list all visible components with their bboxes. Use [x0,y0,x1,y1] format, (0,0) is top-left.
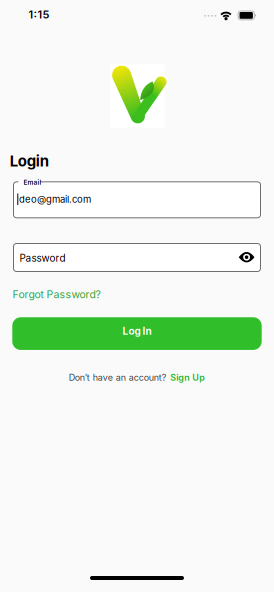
staticText: 1:15 [28,8,49,21]
staticText: Sign Up [170,372,205,383]
staticText: Log In [122,325,151,337]
button[interactable]: Log In [12,317,262,350]
staticText: Email [23,178,41,186]
button[interactable]: Show password [235,245,259,269]
staticText: Login [10,152,49,170]
button[interactable]: Sign Up [170,372,205,383]
staticText: Forgot Password? [12,288,100,301]
staticText: Password [19,252,65,264]
staticText: deo@gmail.com [19,194,91,205]
staticText: Don’t have an account? [69,372,167,383]
button[interactable]: Forgot Password? [12,288,100,301]
